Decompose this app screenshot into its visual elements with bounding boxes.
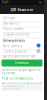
staticText: By continuing you agree to our terms <box>1 68 40 75</box>
button[interactable]: Continue <box>1 59 42 66</box>
staticText: ▪ ▪ ▮ <box>39 2 42 3</box>
staticText: City and postcode <box>2 50 27 53</box>
staticText: Phone number <box>2 27 24 31</box>
staticText: 9:41 <box>2 1 9 4</box>
button[interactable]: More options <box>36 49 40 53</box>
staticText: Street address <box>2 44 21 48</box>
button[interactable]: Read our privacy policy <box>1 77 32 80</box>
button[interactable]: QR Scanner <box>0 5 44 14</box>
button[interactable]: Need help? Contact support <box>1 82 41 85</box>
staticText: Delivery details <box>2 39 24 42</box>
button[interactable]: By continuing you agree to our terms <box>1 68 40 75</box>
button[interactable]: Information <box>36 43 40 47</box>
staticText: Example Inc · All rights reserved <box>3 85 24 87</box>
staticText: Continue <box>15 61 29 65</box>
staticText: Save this address for later <box>2 55 36 58</box>
staticText: Terms · Privacy · Cookies <box>3 88 20 90</box>
staticText: QR Scanner <box>10 7 33 12</box>
staticText: Email address <box>2 22 19 25</box>
staticText: Read our privacy policy <box>1 77 32 80</box>
staticText: Full name <box>2 16 15 20</box>
staticText: Need help? Contact support <box>1 82 41 85</box>
staticText: Company (optional) <box>2 33 29 36</box>
